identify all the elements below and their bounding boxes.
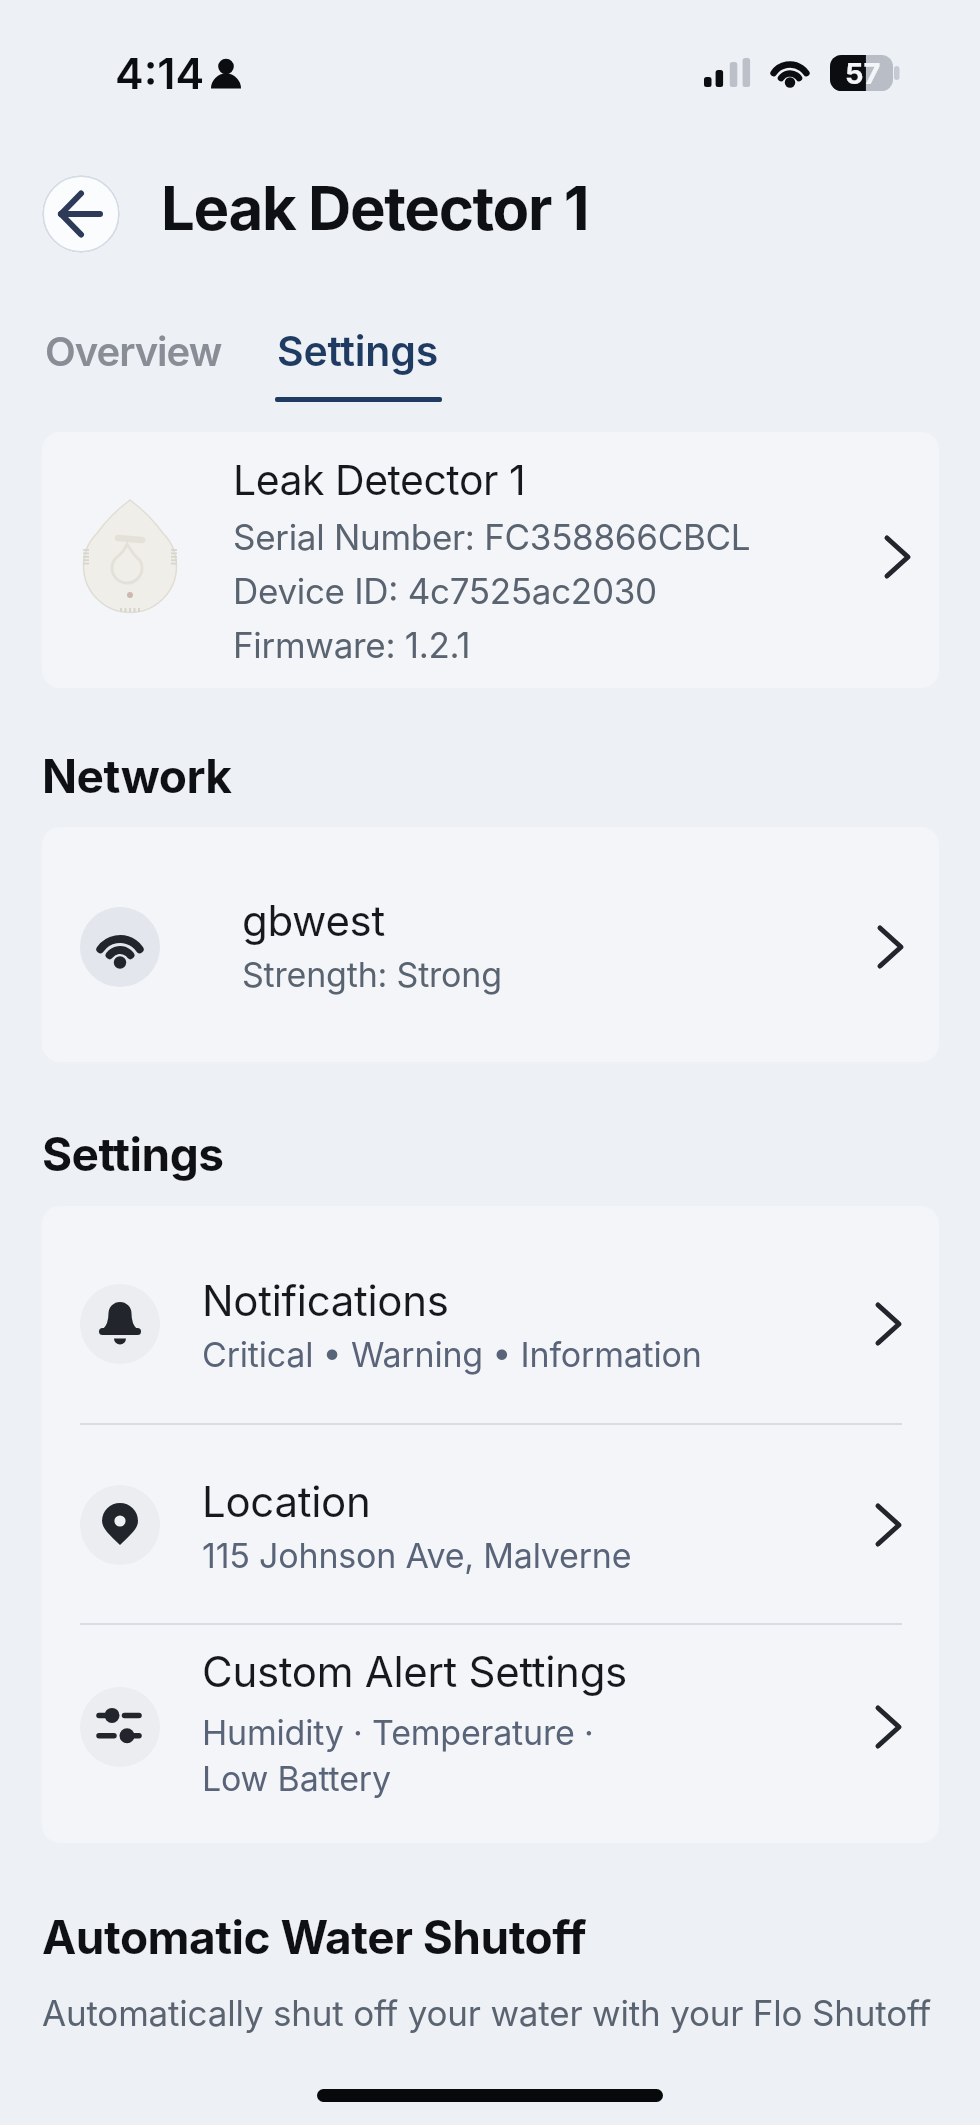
staticText: Network: [42, 748, 232, 804]
staticText: 4:14: [115, 47, 205, 99]
button[interactable]: [42, 175, 120, 253]
staticText: Location: [202, 1476, 371, 1527]
staticText: Critical • Warning • Information: [202, 1334, 702, 1375]
button[interactable]: Overview: [45, 327, 222, 375]
staticText: Automatically shut off your water with y…: [42, 1992, 932, 2034]
staticText: Settings: [277, 326, 438, 376]
button[interactable]: [42, 827, 939, 1062]
staticText: Device ID: 4c7525ac2030: [233, 570, 657, 612]
button[interactable]: [42, 1206, 939, 1424]
staticText: Settings: [42, 1126, 224, 1182]
staticText: Low Battery: [202, 1758, 391, 1799]
button[interactable]: [42, 1424, 939, 1624]
staticText: Serial Number: FC358866CBCL: [233, 516, 751, 558]
staticText: 57: [845, 56, 881, 91]
staticText: Leak Detector 1: [233, 455, 526, 505]
staticText: gbwest: [242, 895, 385, 946]
staticText: Firmware: 1.2.1: [233, 624, 471, 666]
button[interactable]: Settings: [277, 326, 438, 376]
button[interactable]: [42, 432, 939, 688]
button[interactable]: [42, 1624, 939, 1843]
staticText: 115 Johnson Ave, Malverne: [202, 1535, 632, 1576]
staticText: Leak Detector 1: [161, 172, 589, 245]
staticText: Notifications: [202, 1275, 449, 1326]
staticText: Humidity · Temperature ·: [202, 1712, 594, 1753]
staticText: Automatic Water Shutoff: [42, 1909, 586, 1965]
staticText: Strength: Strong: [242, 954, 502, 995]
staticText: Custom Alert Settings: [202, 1646, 627, 1697]
staticText: Overview: [45, 327, 222, 375]
